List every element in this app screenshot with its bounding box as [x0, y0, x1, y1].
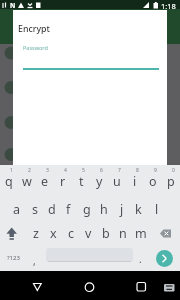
staticText: x — [50, 225, 57, 242]
button[interactable]: 9 — [144, 165, 162, 192]
staticText: n — [119, 225, 127, 242]
button[interactable]: f — [60, 192, 77, 219]
button[interactable]: 7 — [108, 165, 126, 192]
button[interactable] — [0, 218, 26, 245]
button[interactable]: b — [97, 218, 115, 245]
staticText: i — [133, 173, 137, 190]
staticText: a — [13, 201, 21, 218]
button[interactable]: d — [43, 192, 60, 219]
staticText: o — [149, 173, 157, 190]
staticText: c — [68, 225, 75, 242]
staticText: 2 — [28, 167, 31, 174]
button[interactable]: h — [95, 192, 112, 219]
staticText: 8 — [136, 167, 139, 174]
button[interactable]: 8 — [126, 165, 144, 192]
staticText: f — [66, 201, 71, 218]
staticText: 3 — [46, 167, 49, 174]
button[interactable]: z — [27, 218, 45, 245]
staticText: Encrypt — [18, 23, 50, 35]
staticText: e — [41, 173, 49, 190]
staticText: Password — [23, 44, 48, 51]
staticText: t — [79, 173, 84, 190]
button[interactable]: m — [132, 218, 150, 245]
button[interactable]: j — [113, 192, 130, 219]
button[interactable]: s — [26, 192, 43, 219]
staticText: v — [85, 225, 92, 242]
staticText: 1 — [10, 167, 13, 174]
button[interactable]: x — [44, 218, 62, 245]
button[interactable]: 2 — [18, 165, 36, 192]
button[interactable]: v — [79, 218, 97, 245]
staticText: z — [33, 225, 39, 242]
staticText: 4 — [64, 167, 67, 174]
staticText: y — [96, 173, 103, 190]
staticText: j — [120, 201, 124, 218]
button[interactable]: 0 — [162, 165, 180, 192]
button[interactable]: 4 — [54, 165, 72, 192]
staticText: . — [139, 252, 142, 266]
staticText: , — [33, 254, 36, 268]
staticText: h — [100, 201, 108, 218]
staticText: w — [22, 173, 32, 190]
staticText: ?123 — [7, 254, 20, 262]
button[interactable] — [126, 273, 156, 299]
staticText: 0 — [172, 167, 175, 174]
staticText: 1:18 — [161, 1, 176, 11]
staticText: b — [102, 225, 110, 242]
button[interactable]: l — [148, 192, 165, 219]
button[interactable] — [156, 250, 173, 267]
staticText: u — [113, 173, 121, 190]
button[interactable] — [154, 218, 180, 245]
staticText: m — [135, 225, 147, 242]
button[interactable] — [23, 50, 159, 70]
button[interactable]: n — [114, 218, 132, 245]
staticText: l — [155, 201, 159, 218]
button[interactable]: 5 — [72, 165, 90, 192]
button[interactable]: 3 — [36, 165, 54, 192]
button[interactable] — [46, 248, 133, 262]
button[interactable] — [22, 273, 52, 299]
staticText: 7 — [118, 167, 121, 174]
staticText: p — [167, 173, 175, 190]
staticText: s — [32, 201, 38, 218]
staticText: r — [60, 173, 66, 190]
staticText: 5 — [82, 167, 85, 174]
staticText: g — [83, 201, 91, 218]
button[interactable]: k — [130, 192, 147, 219]
staticText: 9 — [154, 167, 157, 174]
button[interactable]: , — [27, 245, 41, 272]
button[interactable]: . — [133, 245, 147, 272]
button[interactable]: g — [78, 192, 95, 219]
button[interactable]: ?123 — [0, 245, 26, 272]
button[interactable]: c — [62, 218, 80, 245]
staticText: k — [135, 201, 142, 218]
staticText: d — [48, 201, 56, 218]
button[interactable]: 6 — [90, 165, 108, 192]
button[interactable]: 1 — [0, 165, 18, 192]
staticText: q — [5, 173, 13, 190]
staticText: N — [10, 1, 16, 10]
button[interactable]: a — [8, 192, 25, 219]
button[interactable] — [75, 273, 105, 299]
staticText: 6 — [100, 167, 103, 174]
